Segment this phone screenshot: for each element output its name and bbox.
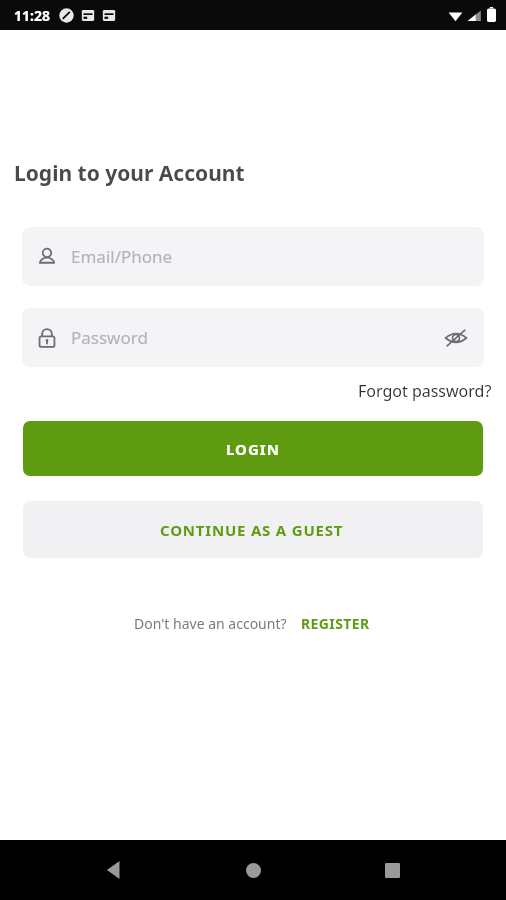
button[interactable]: Forgot password? [356,378,494,404]
button[interactable]: LOGIN [23,421,483,476]
button[interactable]: Email/Phone [22,227,484,286]
button[interactable]: REGISTER [299,612,372,635]
staticText: Email/Phone [71,245,472,268]
staticText: Password [71,326,440,349]
button[interactable]: Password [22,308,484,367]
staticText: CONTINUE AS A GUEST [160,520,344,540]
staticText: 11:28 [14,6,50,25]
button[interactable]: Home [229,846,277,894]
button[interactable]: Recent apps [368,846,416,894]
button[interactable]: Back [91,846,139,894]
button[interactable]: CONTINUE AS A GUEST [23,501,483,558]
staticText: REGISTER [301,614,370,633]
staticText: Don't have an account? [134,614,287,633]
staticText: LOGIN [226,439,280,459]
staticText: Forgot password? [358,380,492,402]
button[interactable]: Show password [440,322,472,354]
staticText: Login to your Account [14,159,245,188]
